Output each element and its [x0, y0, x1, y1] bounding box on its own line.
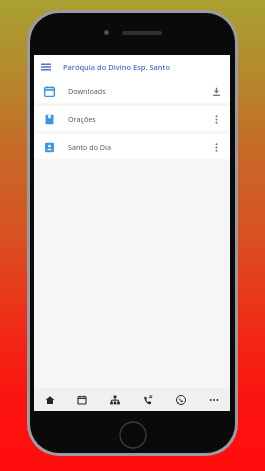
button[interactable]: More options [208, 139, 224, 155]
button[interactable]: More [197, 388, 230, 411]
staticText: Downloads [68, 86, 106, 96]
button[interactable]: Calendar [66, 388, 98, 411]
button[interactable]: Open navigation menu [34, 55, 57, 78]
button[interactable]: WhatsApp [164, 388, 197, 411]
button[interactable]: More options [208, 111, 224, 127]
button[interactable]: Organization [98, 388, 131, 411]
button[interactable]: Call [131, 388, 164, 411]
staticText: Paróquia do Divino Esp. Santo [63, 62, 171, 72]
staticText: Orações [68, 114, 96, 124]
button[interactable]: Home [34, 388, 66, 411]
button[interactable]: Santo do Dia [34, 134, 230, 159]
staticText: Santo do Dia [68, 142, 112, 152]
button[interactable]: Downloads [34, 78, 230, 103]
button[interactable]: Download [208, 83, 224, 99]
button[interactable]: Orações [34, 106, 230, 131]
